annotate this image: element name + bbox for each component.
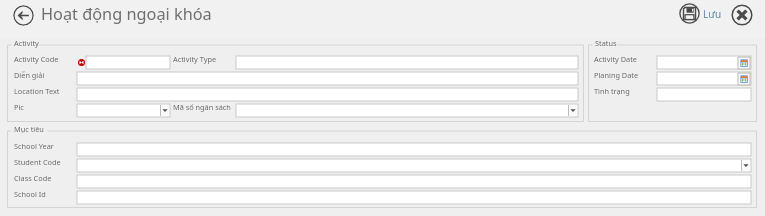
button[interactable]: Pick date — [738, 57, 750, 69]
staticText: Activity Date — [594, 54, 637, 64]
button[interactable] — [77, 191, 751, 204]
button[interactable] — [236, 56, 578, 69]
staticText: Activity Code — [14, 54, 59, 64]
button[interactable]: Close — [731, 4, 753, 26]
staticText: Pic — [14, 102, 24, 112]
staticText: Diễn giải — [14, 70, 45, 80]
staticText: Status — [595, 38, 617, 48]
staticText: Student Code — [14, 157, 61, 167]
button[interactable] — [77, 159, 751, 172]
button[interactable] — [77, 175, 751, 188]
button[interactable]: Pick date — [738, 73, 750, 85]
staticText: Tình trạng — [594, 86, 630, 96]
staticText: School Year — [14, 141, 54, 151]
staticText: Location Text — [14, 86, 60, 96]
button[interactable] — [77, 143, 751, 156]
button[interactable]: Lưu — [679, 3, 722, 24]
staticText: Lưu — [703, 7, 722, 21]
button[interactable] — [77, 88, 578, 101]
staticText: Activity Type — [173, 54, 217, 64]
button[interactable]: Pick date — [657, 72, 751, 85]
button[interactable]: Pick date — [657, 56, 751, 69]
staticText: Class Code — [14, 173, 52, 183]
button[interactable] — [236, 104, 578, 117]
button[interactable] — [77, 72, 578, 85]
button[interactable] — [657, 88, 751, 101]
button[interactable]: Back — [13, 5, 34, 26]
staticText: Mục tiêu — [14, 124, 44, 134]
staticText: School Id — [14, 189, 46, 199]
staticText: Activity — [14, 38, 39, 48]
staticText: Mã số ngân sách — [173, 102, 231, 112]
button[interactable] — [77, 104, 170, 117]
staticText: Planing Date — [594, 70, 639, 80]
button[interactable] — [86, 56, 170, 69]
staticText: Hoạt động ngoại khóa — [41, 3, 212, 25]
